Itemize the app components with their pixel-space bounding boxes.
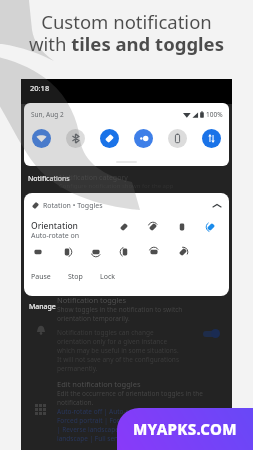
button[interactable]: Orientation option 4 [30,244,46,260]
button[interactable]: Orientation option 5 [59,244,75,260]
staticText: Custom notification [0,9,253,34]
button[interactable]: Collapse [213,202,221,210]
button[interactable]: Orientation option 1 [145,219,161,235]
staticText: Show toggles in the notification to swit… [57,305,183,314]
staticText: Manage [29,302,56,312]
button[interactable]: Orientation option 0 [116,219,132,235]
staticText: landscape | Full sensor [57,434,128,443]
staticText: Sun, Aug 2 [31,110,64,119]
button[interactable]: Orientation option 6 [88,244,104,260]
staticText: Stop [68,272,83,282]
staticText: Pause [31,272,51,282]
staticText: 20:18 [30,83,50,93]
staticText: 100% [206,110,223,119]
staticText: orientation temporarily. [57,314,130,323]
button[interactable]: Orientation option 7 [117,244,133,260]
staticText: Edit the occurrence of orientation toggl… [57,389,203,398]
staticText: | Reverse landscape | Reverse [57,425,150,434]
staticText: Configure notification shown for the app [59,182,174,190]
staticText: Notification toggles [57,295,127,305]
button[interactable]: Quick setting 0 [32,129,51,148]
staticText: It will not save any of the configuratio… [57,355,180,364]
button[interactable]: Pause [29,270,53,284]
staticText: Auto-rotate on [31,231,80,241]
staticText: Notifications [28,174,70,184]
button[interactable]: Quick setting 5 [202,129,221,148]
button[interactable]: Lock [98,270,118,284]
staticText: Lock [100,272,116,282]
button[interactable]: Orientation option 9 [175,244,191,260]
button[interactable]: Orientation option 8 [146,244,162,260]
button[interactable]: Quick setting 4 [168,129,187,148]
button[interactable]: Orientation option 3 [203,219,219,235]
button[interactable]: Quick setting 1 [66,129,85,148]
button[interactable]: Stop [66,270,85,284]
staticText: permanently. [57,364,98,373]
button[interactable]: MYAPKS.COM [117,408,253,450]
staticText: Notification category [59,173,128,183]
staticText: Orientation [31,220,78,232]
staticText: Auto-rotate off | Auto-rotate on | [57,407,161,416]
staticText: which may be useful in some situations. [57,346,179,355]
button[interactable]: Orientation option 2 [174,219,190,235]
staticText: notification. [57,398,94,407]
button[interactable]: Quick setting 3 [134,129,153,148]
staticText: Rotation • Toggles [43,201,103,211]
staticText: Notification toggles can change [57,328,154,337]
staticText: with tiles and toggles [0,31,253,56]
button[interactable]: Quick setting 2 [100,129,119,148]
staticText: orientation only for a given instance [57,337,168,346]
staticText: Edit notification toggles [57,379,141,389]
staticText: MYAPKS.COM [133,419,237,439]
staticText: Forced portrait | Forced landscape | [57,416,170,425]
